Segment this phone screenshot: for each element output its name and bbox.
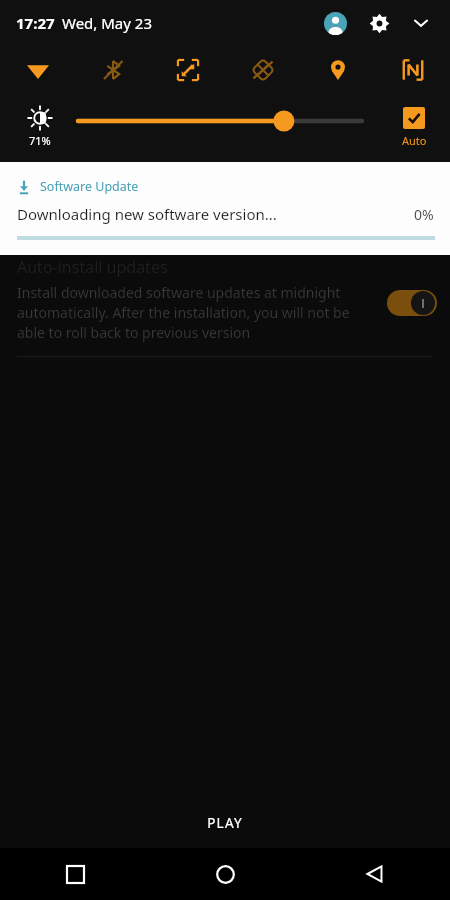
staticText: 17:27 [16, 13, 55, 33]
staticText: 0% [414, 205, 434, 224]
staticText: Downloading new software version... [17, 204, 277, 224]
button[interactable]: Location [300, 46, 375, 94]
button[interactable]: Auto rotate [150, 46, 225, 94]
button[interactable]: Recent apps [0, 848, 150, 900]
button[interactable]: Auto-install updates toggle [387, 289, 437, 317]
button[interactable]: Bluetooth off [75, 46, 150, 94]
staticText: Install downloaded software updates at m… [17, 283, 357, 342]
button[interactable]: Home [150, 848, 300, 900]
staticText: Software Update [40, 178, 139, 195]
button[interactable]: Settings [362, 6, 396, 40]
staticText: 71% [29, 133, 51, 148]
staticText: Auto [402, 133, 427, 148]
staticText: Auto-install updates [17, 256, 168, 278]
staticText: Wed, May 23 [62, 13, 152, 33]
button[interactable]: Brightness [16, 106, 64, 148]
button[interactable]: Software Update [0, 162, 450, 255]
button[interactable]: Wi-Fi [0, 46, 75, 94]
button[interactable]: Auto [390, 107, 438, 148]
button[interactable]: Expand quick settings [404, 6, 438, 40]
button[interactable]: NFC [375, 46, 450, 94]
button[interactable]: Data off [225, 46, 300, 94]
button[interactable]: Back [300, 848, 450, 900]
button[interactable]: User account [318, 6, 352, 40]
staticText: PLAY [207, 814, 243, 832]
button[interactable]: Brightness slider [70, 107, 380, 135]
